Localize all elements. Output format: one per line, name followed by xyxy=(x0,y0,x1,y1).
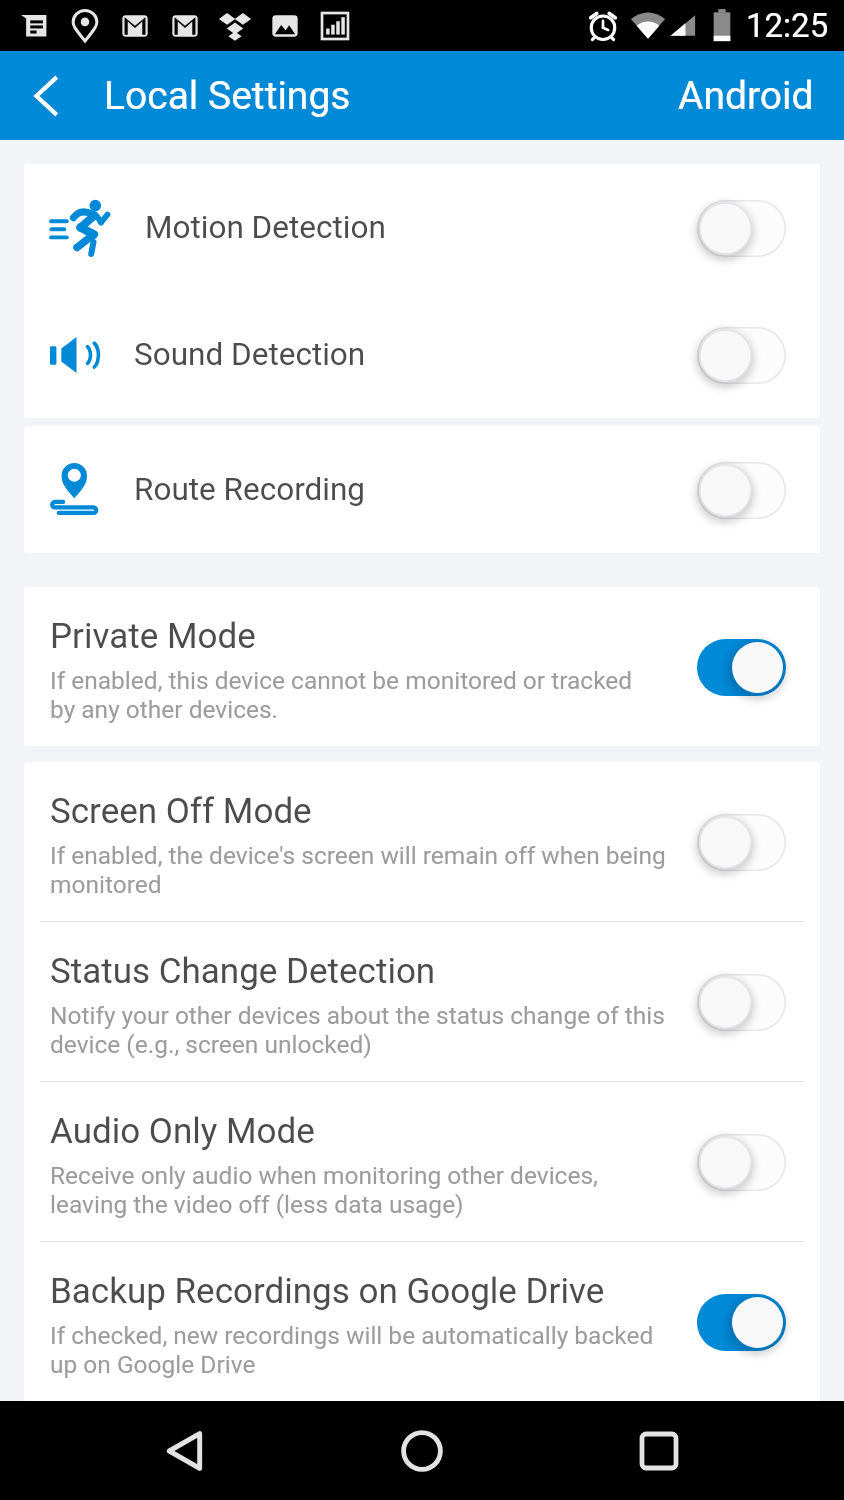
button[interactable]: Switch off xyxy=(685,1122,798,1202)
button[interactable]: Switch off xyxy=(685,450,798,530)
button[interactable]: Motion Detection xyxy=(24,164,820,291)
button[interactable]: Private Mode xyxy=(24,587,820,746)
button[interactable]: Switch on xyxy=(685,627,798,707)
staticText: Backup Recordings on Google Drive xyxy=(50,1271,605,1312)
button[interactable]: Sound Detection xyxy=(24,291,820,418)
staticText: Route Recording xyxy=(134,471,366,508)
staticText: Local Settings xyxy=(104,73,351,119)
button[interactable]: Audio Only Mode xyxy=(24,1082,820,1241)
staticText: If enabled, this device cannot be monito… xyxy=(50,666,633,724)
staticText: 12:25 xyxy=(746,6,829,45)
button[interactable]: Switch off xyxy=(685,188,798,268)
staticText: Sound Detection xyxy=(134,336,366,373)
staticText: Motion Detection xyxy=(145,209,386,246)
staticText: Notify your other devices about the stat… xyxy=(50,1001,665,1059)
button[interactable]: Android xyxy=(678,73,844,119)
button[interactable]: Switch off xyxy=(685,802,798,882)
staticText: If checked, new recordings will be autom… xyxy=(50,1321,654,1379)
button[interactable]: Switch off xyxy=(685,962,798,1042)
staticText: Status Change Detection xyxy=(50,951,436,992)
button[interactable]: Back xyxy=(140,1405,232,1497)
button[interactable]: Switch on xyxy=(685,1282,798,1362)
button[interactable]: Screen Off Mode xyxy=(24,762,820,921)
staticText: Audio Only Mode xyxy=(50,1111,315,1152)
staticText: If enabled, the device's screen will rem… xyxy=(50,841,666,899)
button[interactable]: Recent apps xyxy=(613,1405,705,1497)
button[interactable]: Home xyxy=(376,1405,468,1497)
staticText: Screen Off Mode xyxy=(50,791,312,832)
button[interactable]: Switch off xyxy=(685,315,798,395)
button[interactable]: Backup Recordings on Google Drive xyxy=(24,1242,820,1401)
staticText: Private Mode xyxy=(50,616,256,657)
button[interactable]: Navigate up xyxy=(12,62,80,130)
button[interactable]: Route Recording xyxy=(24,426,820,553)
staticText: Receive only audio when monitoring other… xyxy=(50,1161,598,1219)
button[interactable]: Status Change Detection xyxy=(24,922,820,1081)
